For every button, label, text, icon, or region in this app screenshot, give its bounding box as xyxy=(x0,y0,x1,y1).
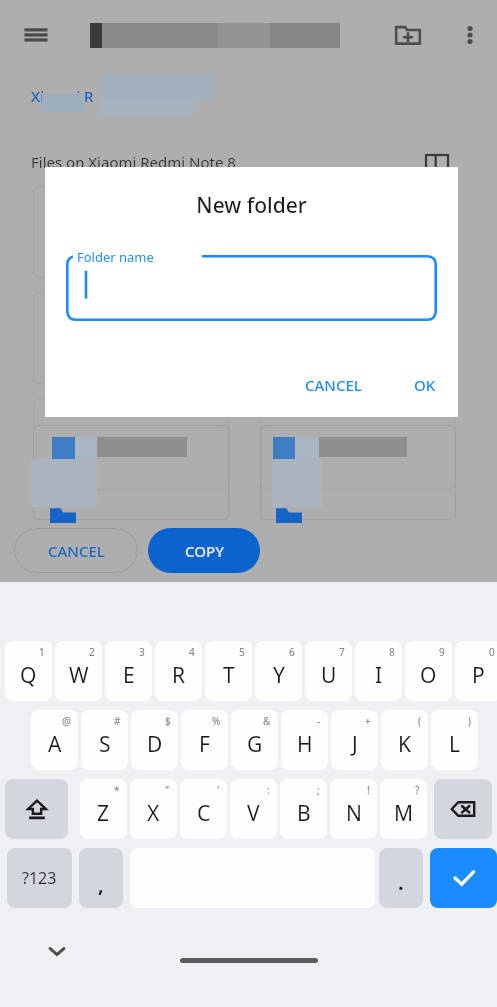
button[interactable]: J xyxy=(331,710,378,770)
button[interactable]: V xyxy=(230,779,277,839)
staticText: . xyxy=(398,869,404,896)
staticText: O xyxy=(420,661,437,690)
button[interactable]: . xyxy=(379,848,423,908)
button[interactable]: G xyxy=(231,710,278,770)
staticText: R xyxy=(172,661,186,690)
button[interactable]: View mode xyxy=(424,150,450,176)
staticText: ? xyxy=(415,783,420,797)
button[interactable]: Q xyxy=(5,641,52,701)
staticText: T xyxy=(223,661,235,690)
staticText: J xyxy=(352,730,358,759)
button[interactable]: More options xyxy=(452,17,488,53)
button[interactable]: B xyxy=(280,779,327,839)
button[interactable]: L xyxy=(431,710,478,770)
staticText: : xyxy=(267,783,270,797)
button[interactable]: ?123 xyxy=(7,848,72,908)
button[interactable]: P xyxy=(455,641,497,701)
button[interactable]: CANCEL xyxy=(293,365,374,405)
staticText: - xyxy=(317,714,321,728)
staticText: ; xyxy=(317,783,320,797)
staticText: Q xyxy=(20,661,37,690)
staticText: L xyxy=(449,730,461,759)
button[interactable]: H xyxy=(281,710,328,770)
button[interactable]: C xyxy=(180,779,227,839)
staticText: ?123 xyxy=(22,867,57,889)
button[interactable]: W xyxy=(55,641,102,701)
staticText: Files on Xiaomi Redmi Note 8 xyxy=(31,152,236,172)
staticText: 7 xyxy=(339,645,345,659)
button[interactable]: OK xyxy=(402,365,448,405)
staticText: New folder xyxy=(45,191,458,220)
button[interactable]: X xyxy=(130,779,177,839)
button[interactable]: M xyxy=(380,779,427,839)
button[interactable]: F xyxy=(181,710,228,770)
button[interactable]: , xyxy=(79,848,123,908)
button[interactable]: Y xyxy=(255,641,302,701)
staticText: Folder name xyxy=(77,248,154,266)
staticText: 0 xyxy=(489,645,495,659)
button[interactable]: Backspace xyxy=(434,779,492,839)
staticText: F xyxy=(199,730,210,759)
staticText: CANCEL xyxy=(48,541,105,561)
button[interactable]: CANCEL xyxy=(14,528,138,573)
staticText: ) xyxy=(468,714,471,728)
staticText: 6 xyxy=(289,645,295,659)
staticText: * xyxy=(114,783,120,797)
button[interactable]: N xyxy=(330,779,377,839)
button[interactable]: E xyxy=(105,641,152,701)
staticText: OK xyxy=(414,375,436,395)
staticText: I xyxy=(375,661,383,690)
staticText: X xyxy=(147,799,160,828)
staticText: G xyxy=(247,730,263,759)
staticText: 2 xyxy=(89,645,95,659)
staticText: N xyxy=(346,799,362,828)
button[interactable]: New folder xyxy=(390,17,426,53)
staticText: E xyxy=(123,661,135,690)
staticText: ! xyxy=(367,783,370,797)
staticText: % xyxy=(212,714,221,728)
staticText: 3 xyxy=(139,645,145,659)
button[interactable]: O xyxy=(405,641,452,701)
staticText: , xyxy=(98,871,104,898)
staticText: ' xyxy=(217,783,220,797)
button[interactable]: Z xyxy=(80,779,127,839)
button[interactable]: T xyxy=(205,641,252,701)
staticText: Xiaomi R xyxy=(31,86,94,106)
button[interactable]: A xyxy=(31,710,78,770)
staticText: # xyxy=(114,714,121,728)
staticText: 4 xyxy=(189,645,195,659)
button[interactable]: U xyxy=(305,641,352,701)
staticText: M xyxy=(394,799,414,828)
staticText: W xyxy=(69,661,89,690)
staticText: Y xyxy=(273,661,285,690)
staticText: B xyxy=(297,799,311,828)
staticText: $ xyxy=(165,714,171,728)
staticText: + xyxy=(365,714,371,728)
staticText: @ xyxy=(62,714,71,728)
staticText: 1 xyxy=(39,645,45,659)
staticText: C xyxy=(197,799,211,828)
button[interactable]: Folder name xyxy=(66,255,437,321)
button[interactable]: S xyxy=(81,710,128,770)
staticText: Z xyxy=(97,799,110,828)
button[interactable]: Menu xyxy=(18,18,54,54)
staticText: U xyxy=(321,661,337,690)
button[interactable]: Hide keyboard xyxy=(40,934,74,968)
staticText: P xyxy=(472,661,485,690)
staticText: ( xyxy=(418,714,421,728)
staticText: 5 xyxy=(239,645,245,659)
staticText: S xyxy=(99,730,111,759)
staticText: & xyxy=(263,714,271,728)
button[interactable]: Shift xyxy=(5,779,68,839)
button[interactable]: COPY xyxy=(148,528,260,573)
button[interactable]: D xyxy=(131,710,178,770)
staticText: K xyxy=(398,730,411,759)
button[interactable]: I xyxy=(355,641,402,701)
staticText: V xyxy=(247,799,260,828)
staticText: A xyxy=(48,730,62,759)
button[interactable]: Enter xyxy=(430,848,497,908)
button[interactable]: K xyxy=(381,710,428,770)
staticText: COPY xyxy=(185,541,224,561)
button[interactable]: R xyxy=(155,641,202,701)
